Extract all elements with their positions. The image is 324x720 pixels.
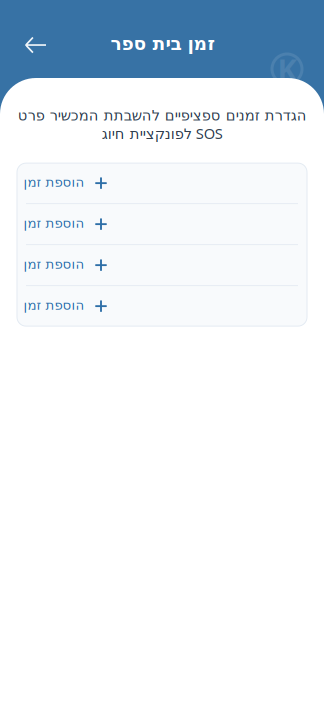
button[interactable]: הוספת זמן xyxy=(17,163,307,203)
staticText: הוספת זמן xyxy=(23,298,84,313)
staticText: הוספת זמן xyxy=(23,175,84,190)
staticText: זמן בית ספר xyxy=(110,33,214,54)
button[interactable]: הוספת זמן xyxy=(17,245,307,285)
staticText: K xyxy=(277,49,296,88)
button[interactable]: Back xyxy=(0,0,61,78)
staticText: הוספת זמן xyxy=(23,216,84,231)
staticText: הוספת זמן xyxy=(23,257,84,272)
button[interactable]: הוספת זמן xyxy=(17,286,307,326)
button[interactable]: הוספת זמן xyxy=(17,204,307,244)
staticText: הגדרת זמנים ספציפיים להשבתת המכשיר פרט ‏… xyxy=(17,107,306,143)
